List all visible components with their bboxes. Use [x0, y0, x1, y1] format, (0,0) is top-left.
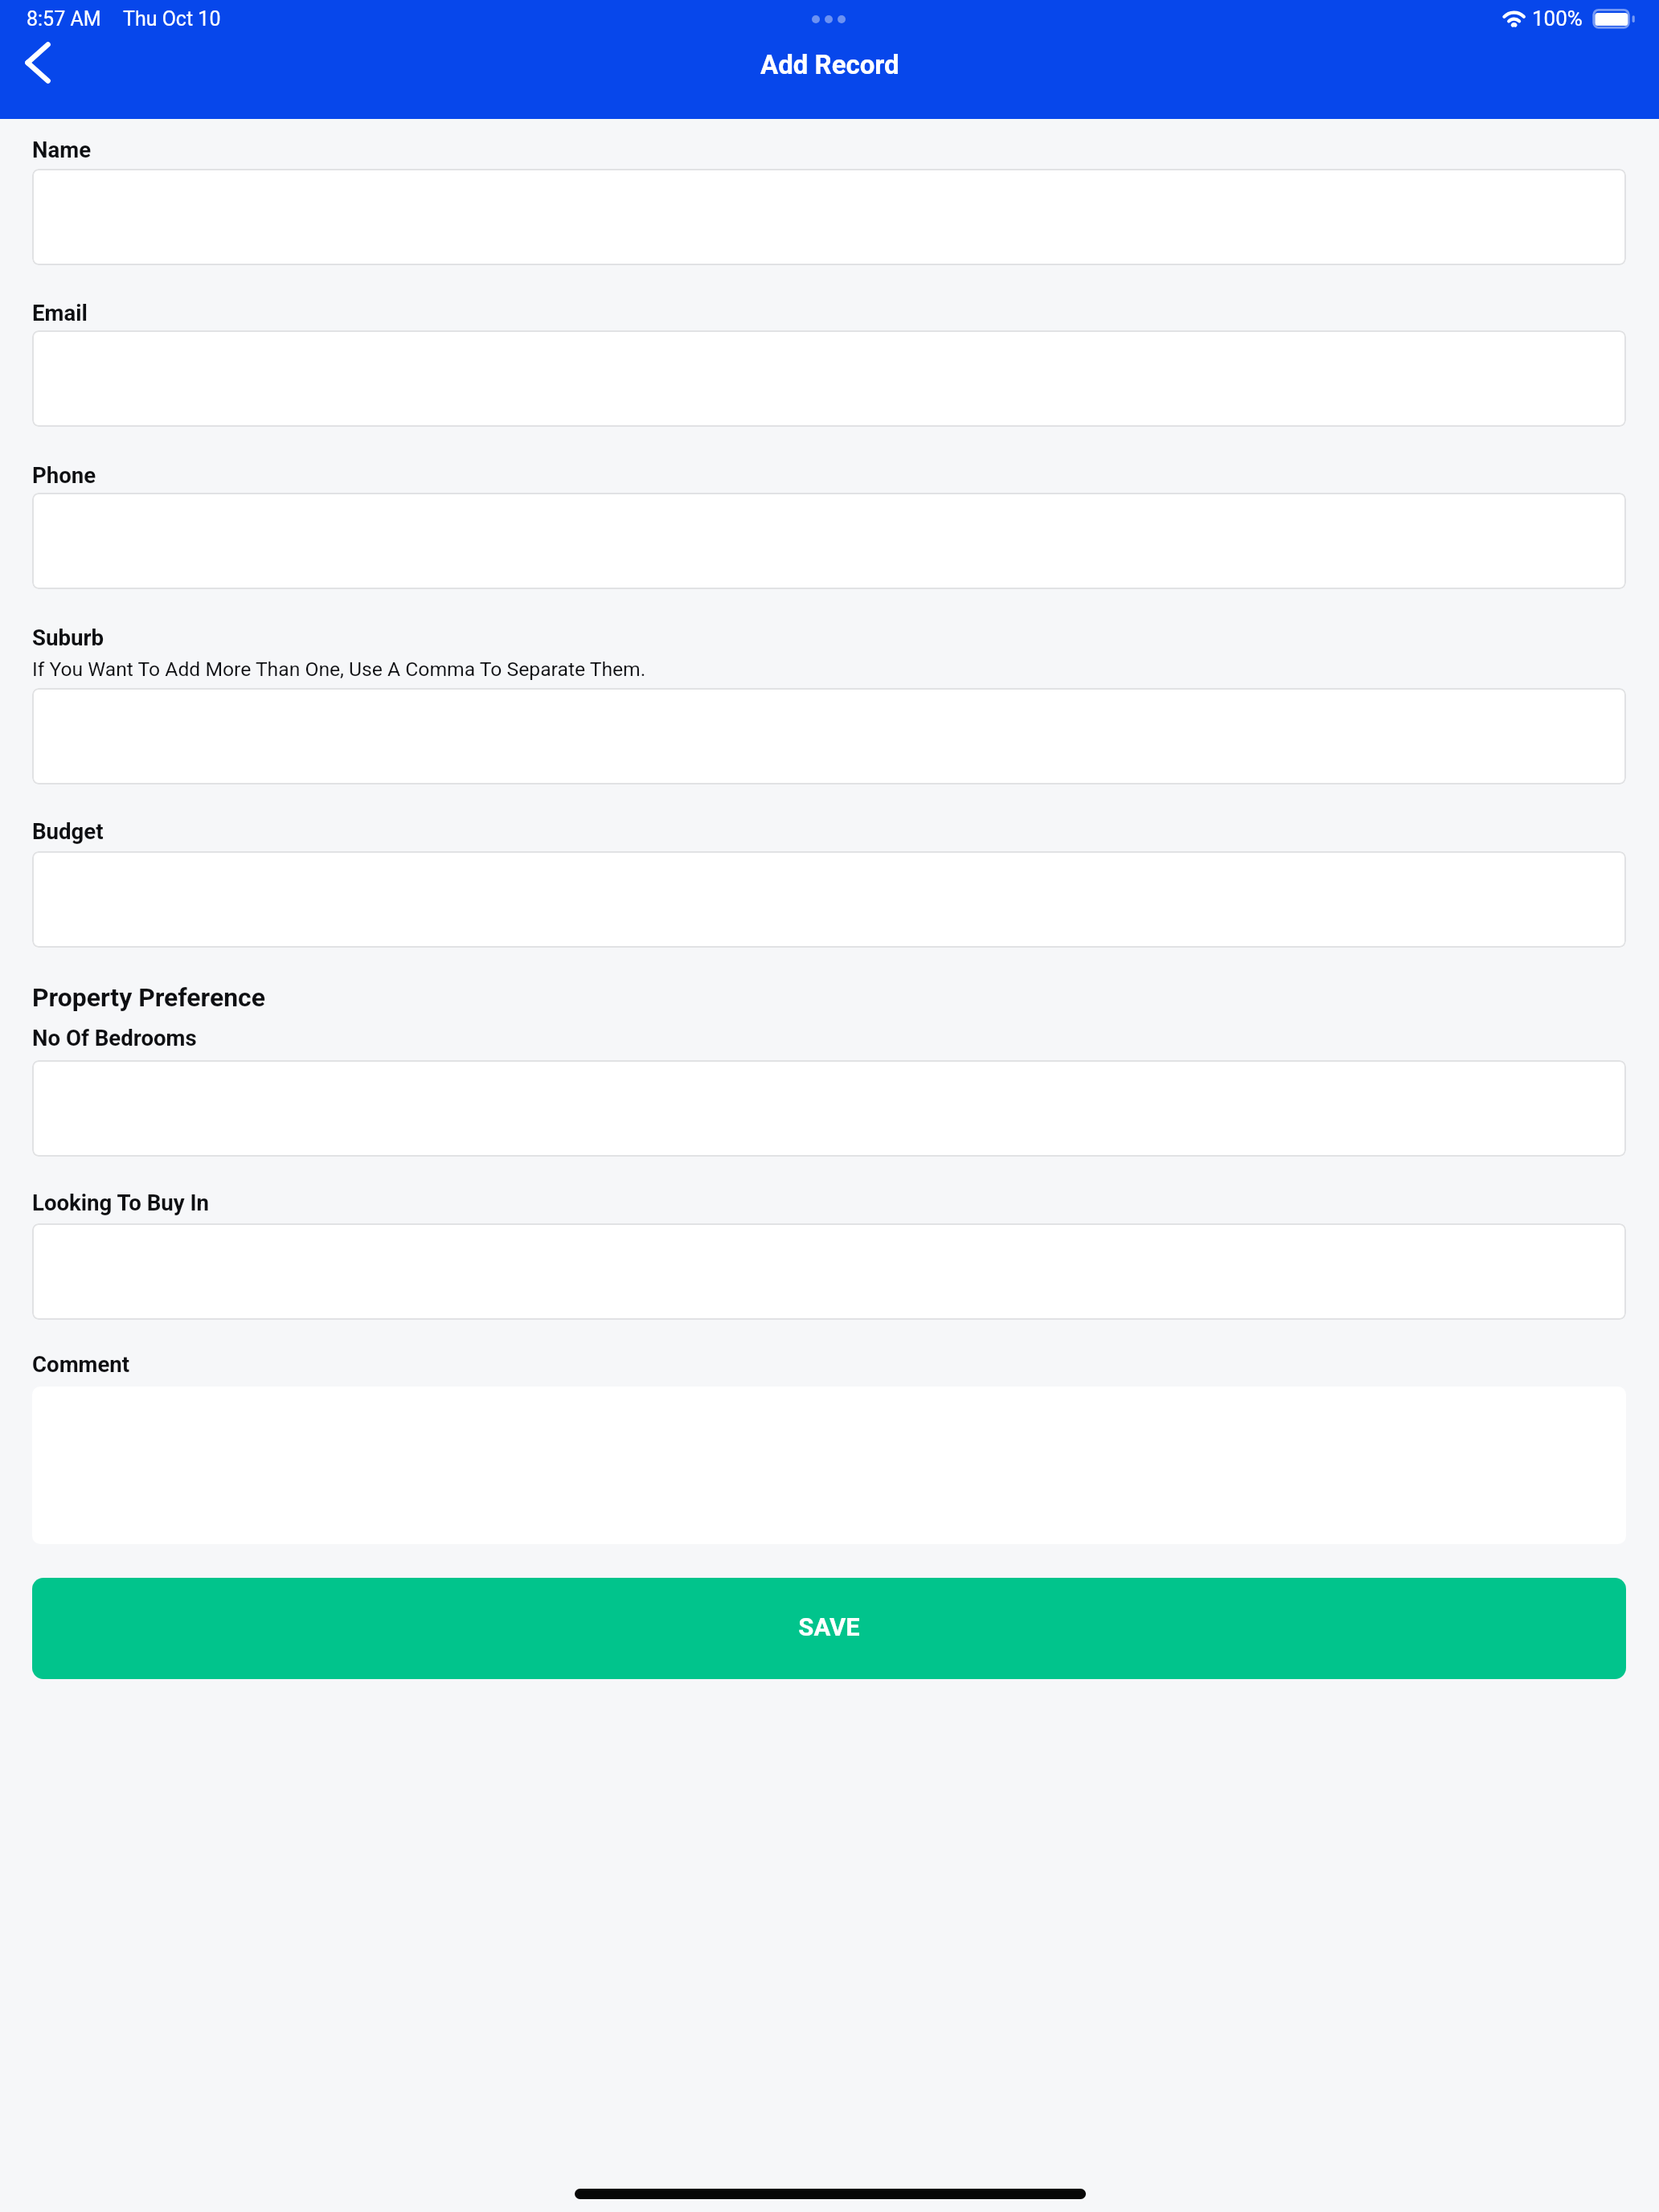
staticText: Add Record [760, 49, 899, 80]
staticText: No Of Bedrooms [32, 1025, 197, 1051]
button[interactable] [32, 688, 1626, 784]
staticText: Budget [32, 818, 104, 844]
button[interactable]: SAVE [32, 1578, 1626, 1679]
staticText: Suburb [32, 625, 104, 650]
button[interactable] [32, 1060, 1626, 1157]
button[interactable] [32, 1223, 1626, 1320]
button[interactable] [32, 169, 1626, 265]
staticText: Thu Oct 10 [123, 7, 221, 31]
other: Wi-Fi [1501, 8, 1528, 31]
staticText: Email [32, 300, 88, 326]
staticText: Comment [32, 1351, 130, 1377]
staticText: Name [32, 137, 92, 162]
button[interactable] [32, 493, 1626, 589]
staticText: 8:57 AM [27, 7, 101, 31]
button[interactable] [32, 330, 1626, 427]
button[interactable]: Back [6, 31, 70, 95]
staticText: SAVE [798, 1612, 860, 1641]
button[interactable] [32, 851, 1626, 948]
other: Battery full [1591, 8, 1636, 31]
staticText: 100% [1532, 6, 1583, 31]
staticText: If You Want To Add More Than One, Use A … [32, 657, 646, 681]
staticText: Property Preference [32, 982, 265, 1012]
staticText: Phone [32, 462, 96, 488]
staticText: Looking To Buy In [32, 1190, 210, 1215]
